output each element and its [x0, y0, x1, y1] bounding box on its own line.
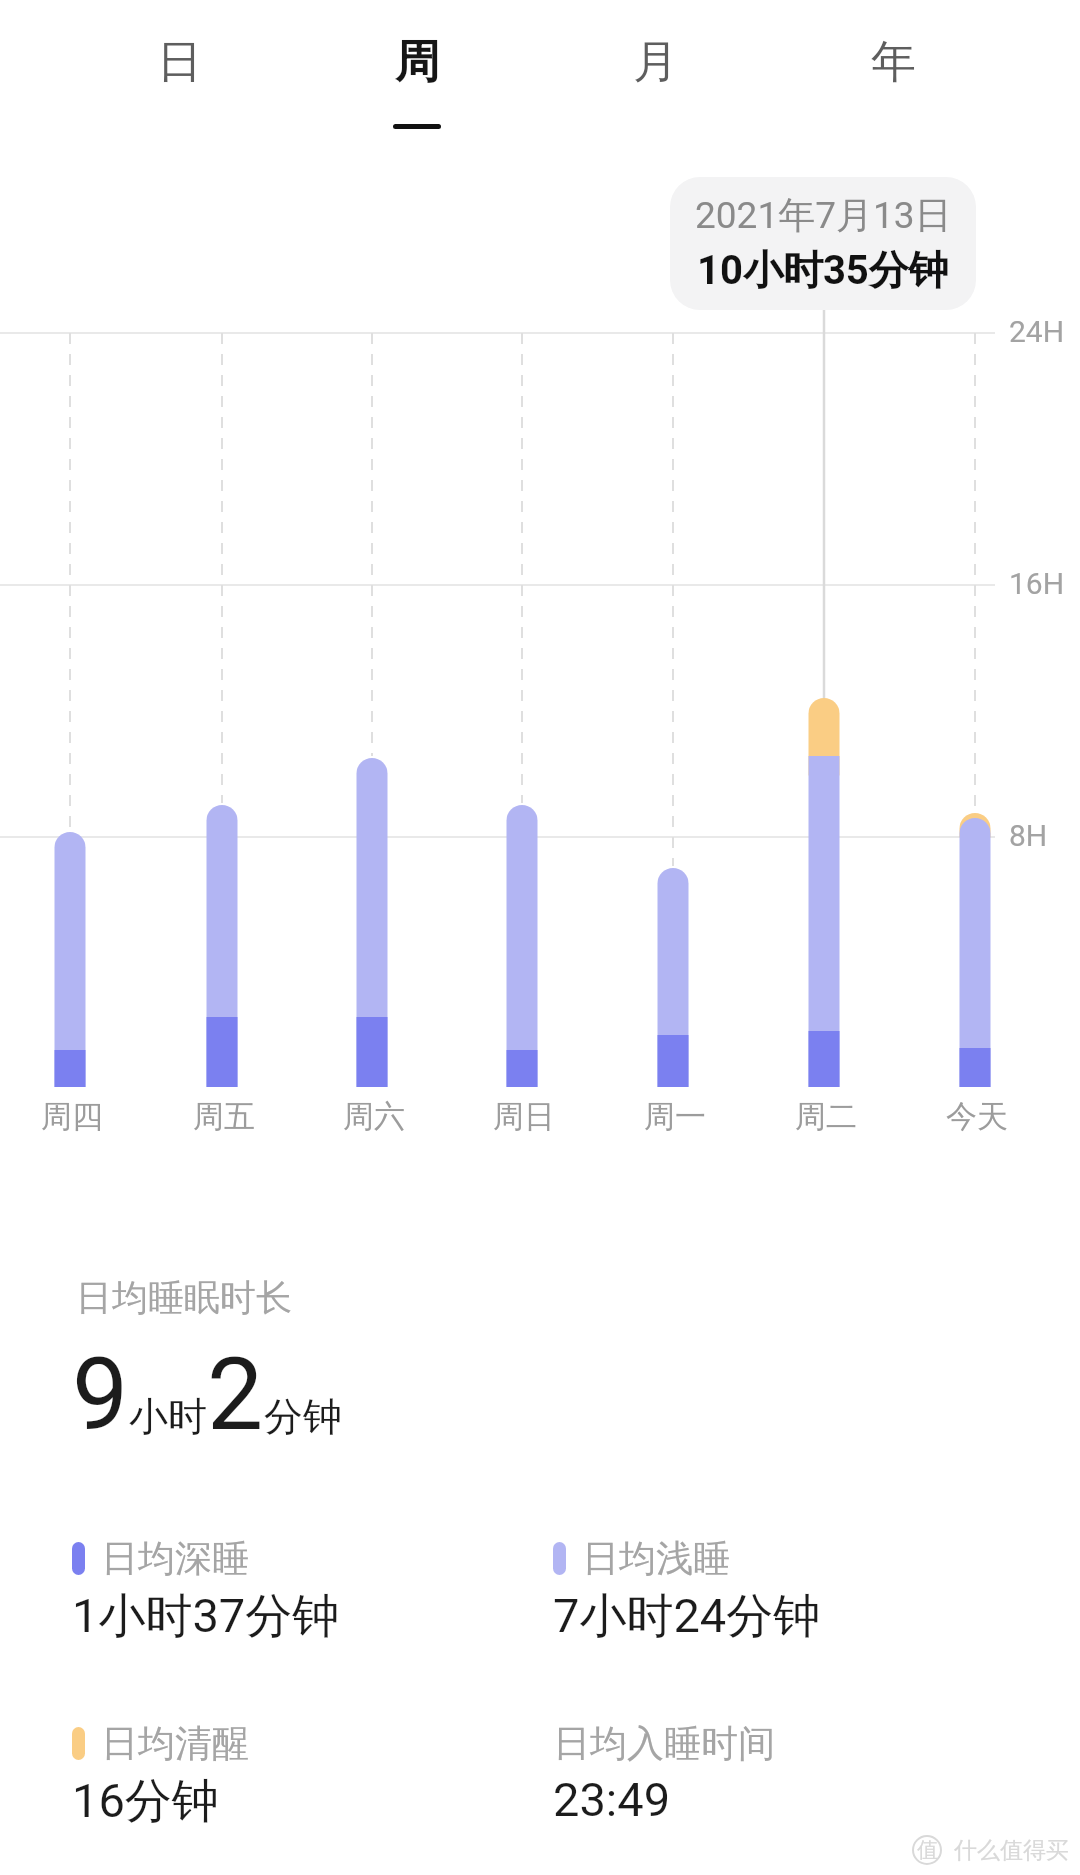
button[interactable]: 日 — [134, 24, 224, 100]
staticText: 16H — [1009, 566, 1065, 601]
staticText: 9 — [72, 1336, 129, 1453]
staticText: 小时 — [129, 1392, 207, 1441]
staticText: 日均深睡 — [101, 1535, 249, 1582]
staticText: 日均睡眠时长 — [76, 1275, 292, 1320]
staticText: 23:49 — [553, 1772, 671, 1827]
button[interactable]: 月 — [610, 24, 700, 100]
button[interactable]: 年 — [848, 24, 938, 100]
staticText: 周六 — [343, 1097, 405, 1136]
staticText: 2 — [207, 1336, 264, 1453]
staticText: 周一 — [644, 1097, 706, 1136]
staticText: 2021年7月13日 — [695, 192, 952, 239]
staticText: 日均入睡时间 — [553, 1720, 775, 1767]
staticText: 什么值得买 — [954, 1836, 1069, 1865]
staticText: 10小时35分钟 — [697, 245, 949, 295]
staticText: 8H — [1009, 818, 1048, 853]
button[interactable]: 日均深睡 — [72, 1535, 340, 1646]
staticText: 周四 — [41, 1097, 103, 1136]
staticText: 1小时37分钟 — [72, 1587, 340, 1646]
staticText: 值 — [917, 1837, 938, 1863]
staticText: 7小时24分钟 — [553, 1587, 821, 1646]
staticText: 周五 — [193, 1097, 255, 1136]
button[interactable]: 周 — [372, 24, 462, 100]
button[interactable]: 2021年7月13日 — [670, 177, 976, 310]
staticText: 周二 — [795, 1097, 857, 1136]
staticText: 分钟 — [264, 1392, 342, 1441]
staticText: 日均清醒 — [101, 1720, 249, 1767]
staticText: 日均浅睡 — [582, 1535, 730, 1582]
button[interactable]: 日均入睡时间 — [553, 1720, 775, 1827]
staticText: 今天 — [946, 1097, 1008, 1136]
staticText: 月 — [633, 34, 678, 91]
staticText: 周 — [395, 34, 440, 91]
staticText: 年 — [871, 34, 916, 91]
staticText: 日 — [157, 34, 202, 91]
button[interactable]: 日均浅睡 — [553, 1535, 821, 1646]
staticText: 16分钟 — [72, 1772, 219, 1831]
staticText: 周日 — [493, 1097, 555, 1136]
staticText: 24H — [1009, 314, 1065, 349]
button[interactable]: 日均清醒 — [72, 1720, 249, 1831]
